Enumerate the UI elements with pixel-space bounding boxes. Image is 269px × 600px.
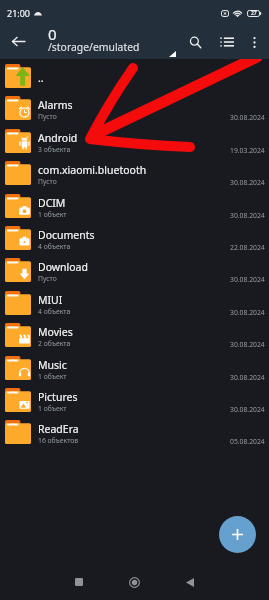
button[interactable]: Android bbox=[0, 124, 269, 156]
button[interactable]: More options bbox=[241, 28, 267, 56]
staticText: 30.08.2024 bbox=[230, 405, 265, 414]
staticText: 30.08.2024 bbox=[230, 373, 265, 382]
button[interactable]: Download bbox=[0, 253, 269, 285]
staticText: 30.08.2024 bbox=[230, 211, 265, 220]
button[interactable]: Alarms bbox=[0, 91, 269, 123]
button[interactable]: Movies bbox=[0, 318, 269, 350]
staticText: Пусто bbox=[38, 112, 57, 121]
staticText: 2 объекта bbox=[38, 339, 71, 348]
button[interactable]: Music bbox=[0, 351, 269, 383]
button[interactable]: Documents bbox=[0, 221, 269, 253]
staticText: 30.08.2024 bbox=[230, 178, 265, 187]
staticText: 19.03.2024 bbox=[230, 146, 265, 155]
staticText: Пусто bbox=[38, 274, 57, 283]
staticText: 1 объект bbox=[38, 404, 67, 413]
button[interactable]: MIUI bbox=[0, 286, 269, 318]
button[interactable]: Search bbox=[181, 28, 209, 56]
staticText: 1 объект bbox=[38, 372, 67, 381]
button[interactable]: Recents bbox=[62, 564, 96, 600]
button[interactable]: com.xiaomi.bluetooth bbox=[0, 156, 269, 188]
staticText: 27 bbox=[251, 10, 257, 17]
staticText: Music bbox=[38, 358, 67, 372]
staticText: MIUI bbox=[38, 293, 63, 307]
staticText: com.xiaomi.bluetooth bbox=[38, 163, 147, 177]
staticText: 22.08.2024 bbox=[230, 243, 265, 252]
button[interactable]: Back bbox=[5, 28, 31, 54]
staticText: Download bbox=[38, 260, 88, 274]
staticText: 21:00 bbox=[7, 7, 31, 19]
staticText: Android bbox=[38, 131, 78, 145]
button[interactable]: Add bbox=[219, 516, 256, 553]
button[interactable]: DCIM bbox=[0, 189, 269, 221]
staticText: 30.08.2024 bbox=[230, 340, 265, 349]
button[interactable]: ReadEra bbox=[0, 415, 269, 447]
staticText: 16 объектов bbox=[38, 436, 79, 445]
staticText: Movies bbox=[38, 325, 73, 339]
staticText: 05.08.2024 bbox=[230, 437, 265, 446]
staticText: 0 bbox=[48, 24, 57, 44]
button[interactable]: Pictures bbox=[0, 383, 269, 415]
staticText: 4 объекта bbox=[38, 242, 71, 251]
button[interactable]: Back bbox=[173, 564, 207, 600]
staticText: Пусто bbox=[38, 177, 57, 186]
staticText: 1 объект bbox=[38, 210, 67, 219]
staticText: 3 объекта bbox=[38, 145, 71, 154]
staticText: ReadEra bbox=[38, 422, 79, 436]
button[interactable]: .. bbox=[0, 59, 269, 91]
staticText: Documents bbox=[38, 228, 95, 242]
staticText: DCIM bbox=[38, 196, 66, 210]
button[interactable]: View mode bbox=[213, 28, 241, 56]
staticText: .. bbox=[38, 71, 44, 85]
staticText: 30.08.2024 bbox=[230, 308, 265, 317]
staticText: /storage/emulated bbox=[48, 40, 140, 54]
staticText: 30.08.2024 bbox=[230, 113, 265, 122]
staticText: 30.08.2024 bbox=[230, 275, 265, 284]
staticText: Alarms bbox=[38, 98, 73, 112]
staticText: Pictures bbox=[38, 390, 78, 404]
button[interactable]: Home bbox=[117, 564, 151, 600]
staticText: 4 объекта bbox=[38, 307, 71, 316]
